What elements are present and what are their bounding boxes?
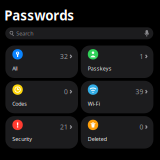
staticText: All — [12, 65, 17, 72]
staticText: Codes — [12, 100, 27, 107]
staticText: 32 — [60, 52, 68, 61]
staticText: Security — [12, 135, 32, 143]
button[interactable]: 0 — [5, 81, 78, 113]
staticText: Deleted — [88, 135, 107, 143]
button[interactable]: 1 — [81, 45, 153, 78]
staticText: 1 — [139, 52, 143, 61]
staticText: 39 — [135, 87, 143, 96]
staticText: 21 — [60, 123, 68, 131]
staticText: Passwords — [4, 6, 74, 24]
staticText: 0 — [64, 87, 68, 96]
button[interactable]: 0 — [81, 116, 153, 149]
button[interactable]: 21 — [5, 116, 78, 149]
button[interactable]: 39 — [81, 81, 153, 113]
button[interactable]: 32 — [5, 45, 78, 78]
staticText: Wi-Fi — [88, 100, 100, 107]
staticText: Passkeys — [88, 65, 112, 72]
staticText: 0 — [139, 123, 143, 131]
button[interactable]: Search — [5, 27, 153, 39]
staticText: Search — [16, 30, 33, 37]
